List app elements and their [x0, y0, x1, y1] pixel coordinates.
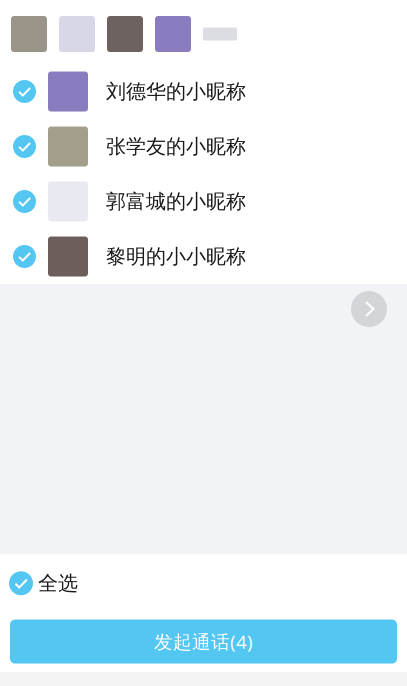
button[interactable]: Selected contact 1: [11, 16, 47, 52]
button[interactable]: Selected contact 4: [155, 16, 191, 52]
button[interactable]: 黎明的小小昵称: [0, 229, 407, 284]
button[interactable]: Next: [351, 291, 387, 327]
staticText: 郭富城的小昵称: [106, 189, 246, 214]
button[interactable]: 刘德华的小昵称: [0, 64, 407, 119]
button[interactable]: 全选: [0, 554, 407, 620]
button[interactable]: 发起通话(4): [10, 620, 397, 664]
staticText: 黎明的小小昵称: [106, 244, 246, 269]
button[interactable]: 郭富城的小昵称: [0, 174, 407, 229]
staticText: 刘德华的小昵称: [106, 79, 246, 104]
staticText: 张学友的小昵称: [106, 134, 246, 159]
staticText: 发起通话(4): [154, 629, 253, 654]
staticText: 全选: [38, 571, 78, 596]
button[interactable]: 张学友的小昵称: [0, 119, 407, 174]
button[interactable]: Selected contact 3: [107, 16, 143, 52]
